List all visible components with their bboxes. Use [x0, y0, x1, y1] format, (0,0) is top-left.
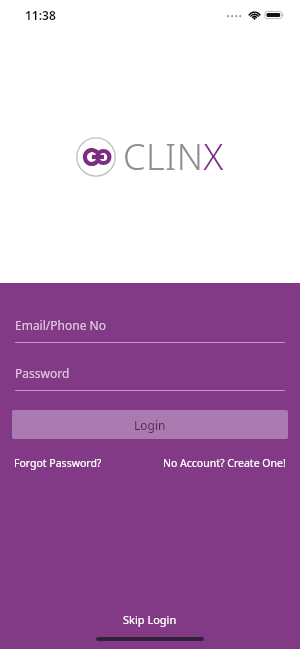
- staticText: Password: [15, 365, 70, 381]
- button[interactable]: Skip Login: [0, 607, 300, 632]
- button[interactable]: Password: [0, 365, 300, 391]
- button[interactable]: No Account? Create One!: [163, 456, 286, 470]
- staticText: Forgot Password?: [14, 456, 102, 470]
- button[interactable]: Email/Phone No: [0, 317, 300, 343]
- button[interactable]: Login: [12, 410, 288, 439]
- staticText: Email/Phone No: [15, 317, 106, 333]
- staticText: Login: [134, 417, 166, 433]
- staticText: CLINX: [123, 132, 224, 181]
- button[interactable]: Forgot Password?: [14, 456, 102, 470]
- staticText: No Account? Create One!: [163, 456, 286, 470]
- staticText: Skip Login: [123, 612, 177, 627]
- staticText: 11:38: [25, 7, 56, 23]
